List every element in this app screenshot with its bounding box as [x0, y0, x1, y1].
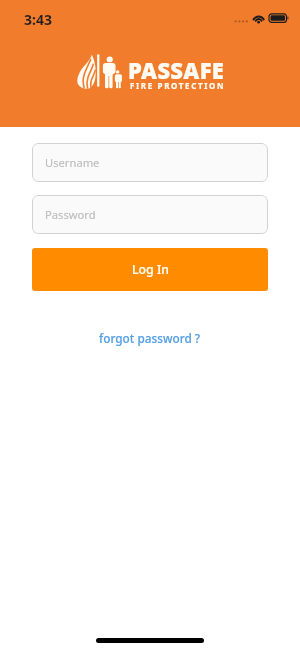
staticText: forgot password ? — [99, 330, 201, 346]
staticText: 3:43 — [24, 10, 52, 29]
other: Status icons — [0, 0, 300, 34]
staticText: Password — [45, 207, 96, 222]
button[interactable]: Username — [32, 143, 268, 182]
staticText: FIRE PROTECTION — [130, 80, 226, 91]
button[interactable]: forgot password ? — [89, 324, 211, 352]
button[interactable]: Log In — [32, 248, 268, 291]
staticText: PASSAFE — [128, 55, 225, 85]
button[interactable]: Password — [32, 195, 268, 234]
staticText: Username — [45, 155, 100, 170]
staticText: Log In — [132, 261, 169, 278]
